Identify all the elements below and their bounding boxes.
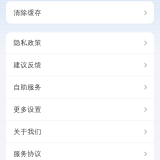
staticText: 自助服务: [13, 83, 41, 91]
button[interactable]: 服务协议: [6, 143, 154, 160]
button[interactable]: 隐私政策: [6, 32, 154, 53]
staticText: 服务协议: [13, 150, 41, 158]
staticText: 隐私政策: [13, 39, 41, 47]
staticText: 更多设置: [13, 105, 41, 114]
button[interactable]: 自助服务: [6, 77, 154, 98]
staticText: 建议反馈: [13, 61, 41, 69]
staticText: 清除缓存: [13, 9, 41, 17]
button[interactable]: 清除缓存: [6, 2, 154, 23]
staticText: 关于我们: [13, 128, 41, 136]
button[interactable]: 更多设置: [6, 99, 154, 120]
button[interactable]: 建议反馈: [6, 54, 154, 76]
button[interactable]: 关于我们: [6, 121, 154, 142]
